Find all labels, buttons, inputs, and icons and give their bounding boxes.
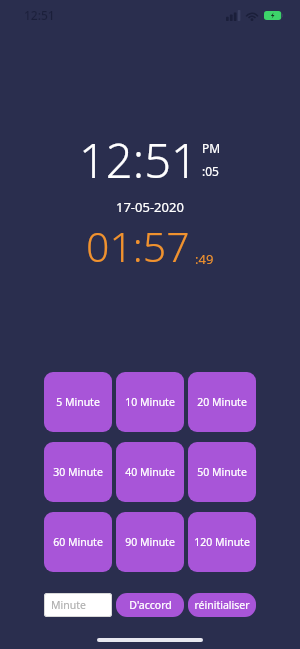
button[interactable]: réinitialiser [188,593,256,617]
button[interactable]: 40 Minute [116,442,184,502]
staticText: 17-05-2020 [116,198,184,216]
button[interactable]: 30 Minute [44,442,112,502]
staticText: D'accord [129,598,172,612]
button[interactable]: 90 Minute [116,512,184,572]
staticText: :49 [195,250,214,268]
staticText: 30 Minute [53,465,103,479]
staticText: 5 Minute [56,395,100,409]
staticText: Minute [51,598,86,612]
staticText: 10 Minute [125,395,175,409]
button[interactable]: 10 Minute [116,372,184,432]
staticText: 90 Minute [125,535,175,549]
button[interactable]: 50 Minute [188,442,256,502]
button[interactable]: 20 Minute [188,372,256,432]
button[interactable]: 120 Minute [188,512,256,572]
staticText: 12:51 [24,7,55,23]
staticText: PM [202,140,221,156]
staticText: 12:51 [79,128,198,192]
staticText: 01:57 [86,218,190,274]
staticText: 50 Minute [197,465,247,479]
button[interactable]: D'accord [116,593,184,617]
staticText: réinitialiser [194,598,250,612]
staticText: 120 Minute [194,535,250,549]
staticText: 20 Minute [197,395,247,409]
staticText: :05 [202,163,219,179]
staticText: 60 Minute [53,535,103,549]
staticText: 40 Minute [125,465,175,479]
button[interactable]: 5 Minute [44,372,112,432]
button[interactable]: 60 Minute [44,512,112,572]
button[interactable]: Minute [44,593,112,617]
